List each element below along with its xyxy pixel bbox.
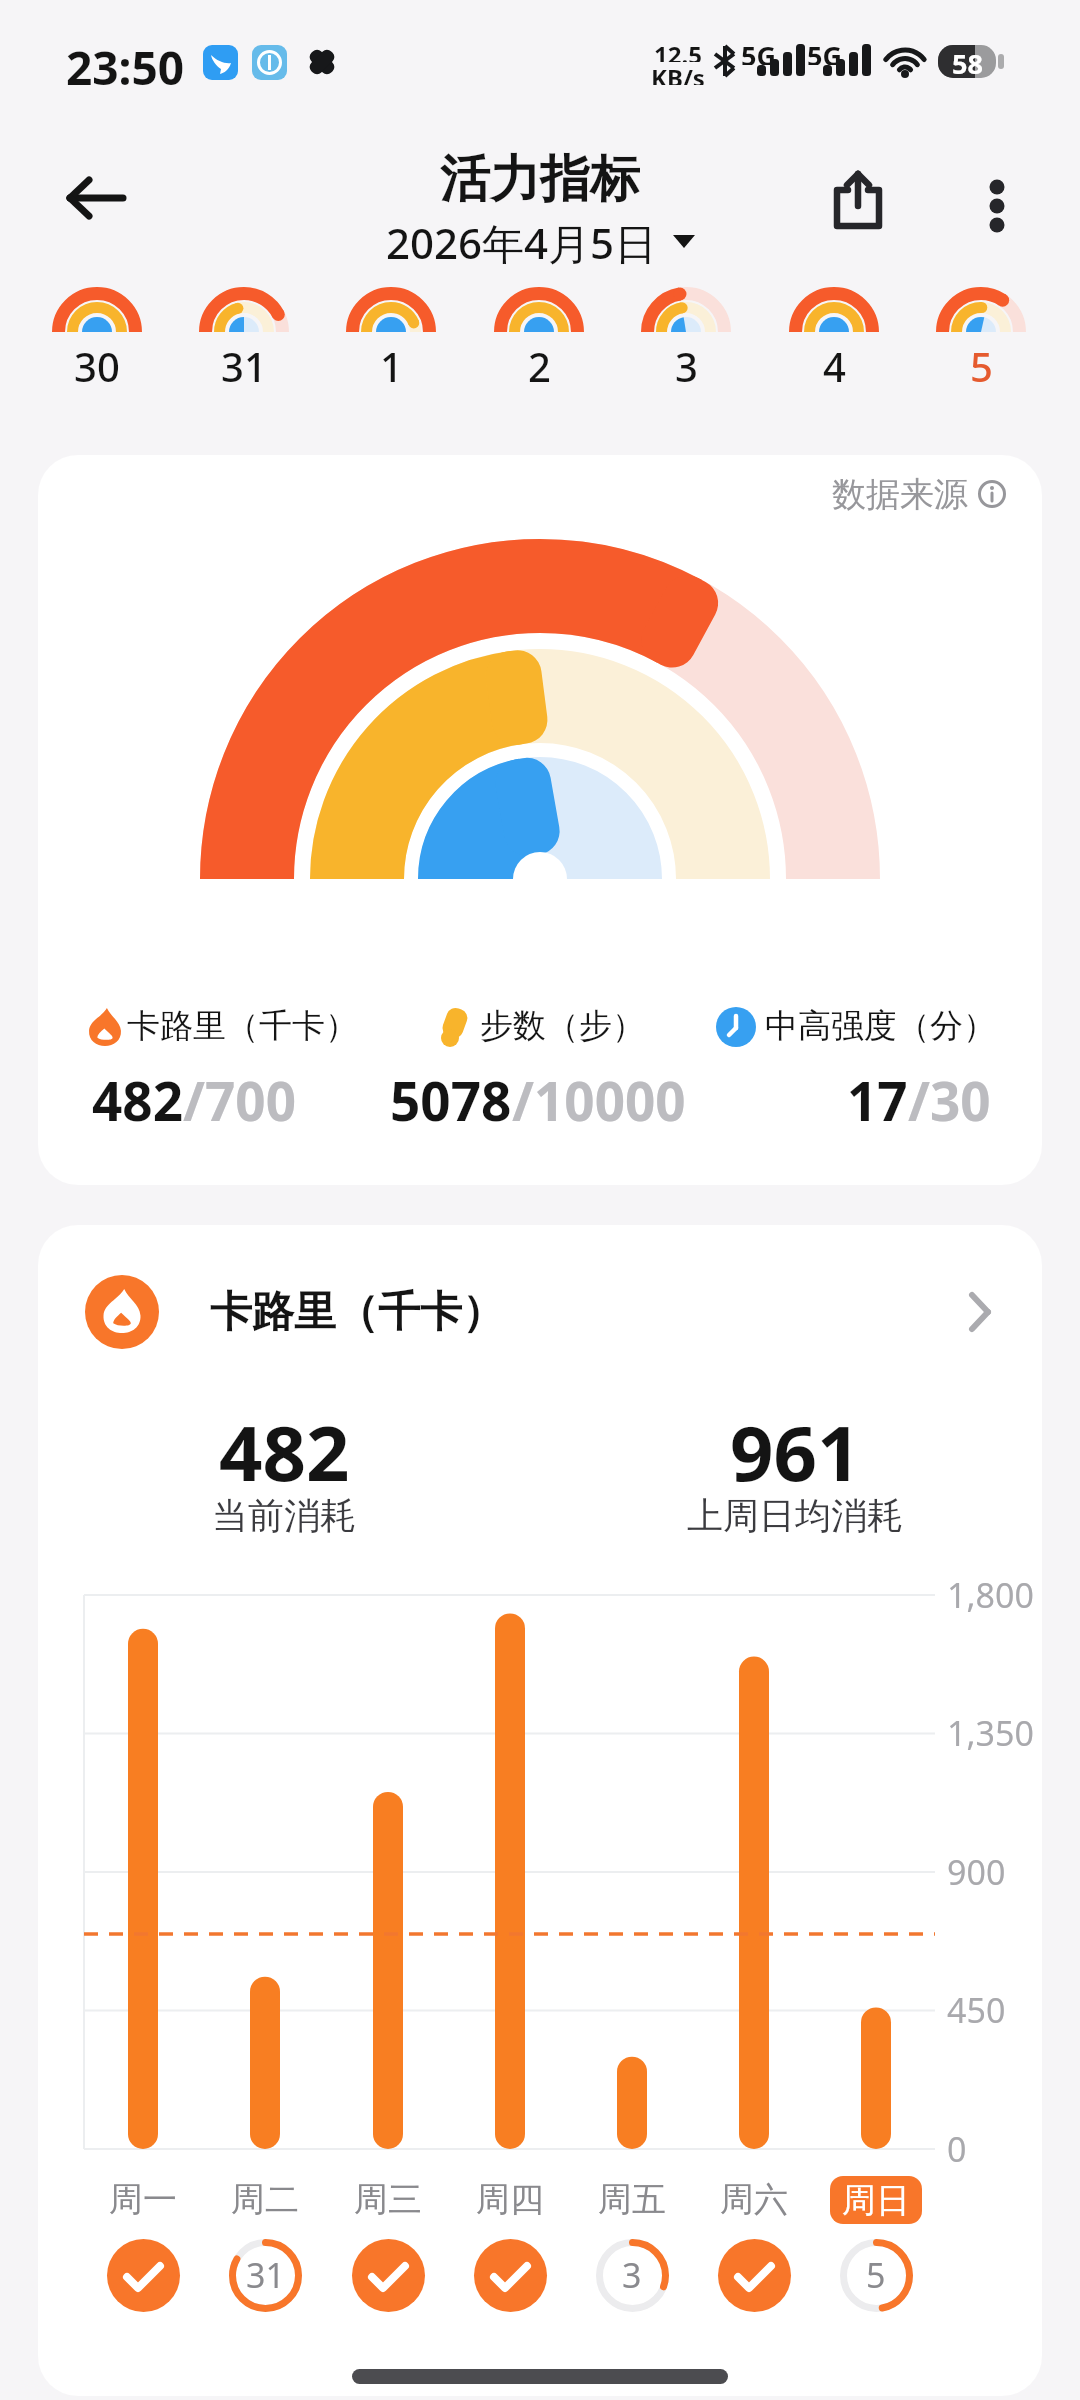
button[interactable]: 4 — [774, 282, 894, 394]
staticText: 961 — [730, 1400, 861, 1492]
staticText: 当前消耗 — [212, 1493, 356, 1538]
staticText: 1 — [380, 339, 403, 393]
staticText: 5078 — [390, 1064, 512, 1130]
button[interactable]: 2 — [479, 282, 599, 394]
staticText: 0 — [947, 2126, 967, 2172]
staticText: 2026年4月5日 — [386, 214, 657, 268]
staticText: 2 — [528, 339, 551, 393]
staticText: 活力指标 — [440, 148, 640, 206]
staticText: 周五 — [598, 2178, 666, 2221]
staticText: KB/s — [651, 61, 705, 85]
button[interactable]: 31 — [225, 2235, 305, 2315]
button[interactable]: 数据来源 — [38, 455, 1042, 1185]
button[interactable]: 3 — [592, 2235, 672, 2315]
staticText: 周二 — [231, 2178, 299, 2221]
staticText: 周四 — [476, 2178, 544, 2221]
staticText: 482 — [92, 1064, 183, 1130]
staticText: 卡路里（千卡） — [127, 1005, 358, 1047]
staticText: /10000 — [512, 1064, 686, 1130]
button[interactable] — [470, 2235, 550, 2315]
staticText: 17 — [847, 1064, 908, 1130]
staticText: 12.5 — [654, 38, 702, 62]
staticText: 1,800 — [947, 1572, 1034, 1618]
staticText: 周一 — [109, 2178, 177, 2221]
staticText: 30 — [74, 339, 120, 393]
staticText: 31 — [221, 339, 267, 393]
staticText: 5G — [741, 37, 776, 65]
staticText: 3 — [675, 339, 698, 393]
button[interactable]: 周日 — [830, 2176, 922, 2224]
staticText: 5 — [970, 339, 993, 393]
staticText: 周三 — [354, 2178, 422, 2221]
staticText: 周六 — [720, 2178, 788, 2221]
staticText: 步数（步） — [480, 1005, 645, 1047]
staticText: 数据来源 — [832, 473, 968, 516]
button[interactable]: 5 — [836, 2235, 916, 2315]
staticText: 450 — [947, 1987, 1006, 2033]
staticText: 23:50 — [66, 36, 185, 90]
staticText: /700 — [183, 1064, 296, 1130]
button[interactable]: 31 — [184, 282, 304, 394]
staticText: 900 — [947, 1849, 1006, 1895]
button[interactable]: 3 — [626, 282, 746, 394]
button[interactable]: 30 — [37, 282, 157, 394]
staticText: 58 — [952, 45, 983, 78]
staticText: 4 — [823, 339, 846, 393]
staticText: 1,350 — [947, 1710, 1034, 1756]
button[interactable] — [714, 2235, 794, 2315]
staticText: /30 — [908, 1064, 991, 1130]
staticText: 31 — [246, 2252, 285, 2298]
staticText: 482 — [219, 1400, 350, 1492]
button[interactable] — [826, 168, 890, 232]
staticText: 中高强度（分） — [765, 1005, 996, 1047]
staticText: 周日 — [842, 2179, 910, 2222]
button[interactable] — [348, 2235, 428, 2315]
button[interactable]: 卡路里（千卡） — [38, 1267, 1042, 1357]
staticText: 5 — [866, 2252, 886, 2298]
button[interactable]: 2026年4月5日 — [300, 214, 780, 268]
button[interactable]: 1 — [331, 282, 451, 394]
staticText: 3 — [622, 2252, 642, 2298]
button[interactable] — [965, 172, 1029, 236]
staticText: 上周日均消耗 — [687, 1493, 903, 1538]
button[interactable] — [58, 160, 134, 236]
staticText: 卡路里（千卡） — [210, 1286, 504, 1339]
button[interactable]: 5 — [921, 282, 1041, 394]
staticText: 5G — [807, 37, 842, 65]
button[interactable] — [103, 2235, 183, 2315]
